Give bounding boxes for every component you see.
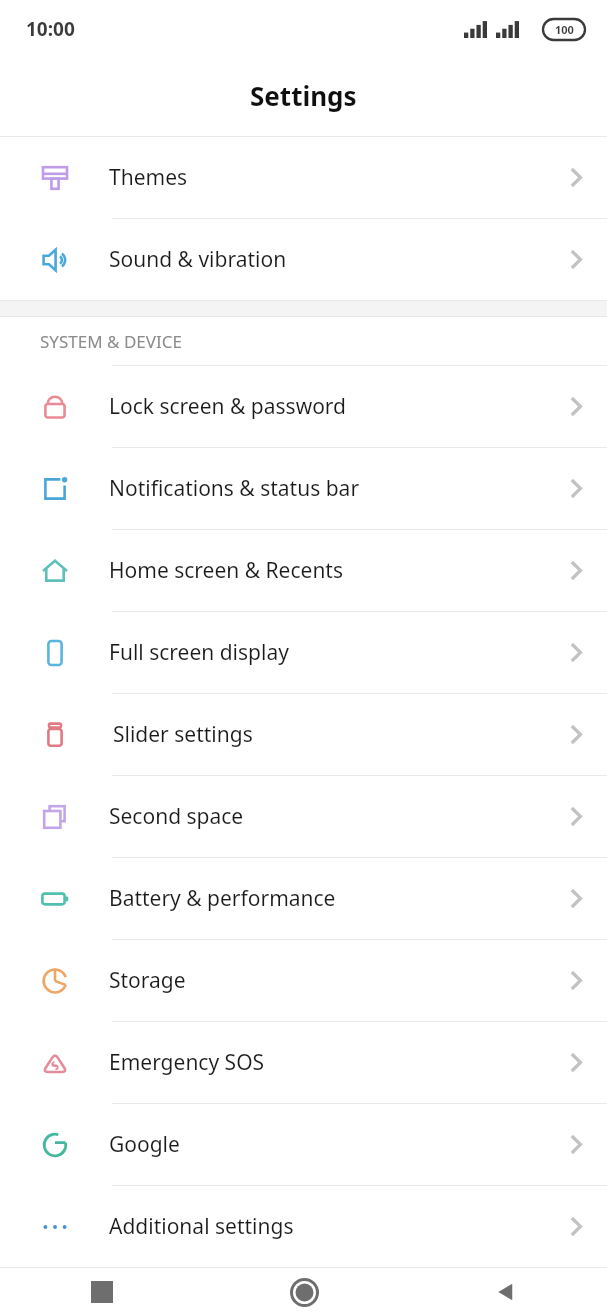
button[interactable]: Storage [0, 940, 607, 1021]
staticText: Themes [109, 163, 544, 192]
button[interactable]: Notifications & status bar [0, 448, 607, 529]
staticText: Full screen display [109, 638, 544, 667]
button[interactable]: Google [0, 1104, 607, 1185]
button[interactable]: Themes [0, 137, 607, 218]
staticText: Google [109, 1130, 544, 1159]
staticText: Notifications & status bar [109, 474, 544, 503]
button[interactable]: Home [203, 1268, 405, 1316]
staticText: Storage [109, 966, 544, 995]
button[interactable]: Second space [0, 776, 607, 857]
staticText: Slider settings [113, 720, 548, 749]
staticText: 100 [555, 22, 574, 37]
button[interactable]: Slider settings [0, 694, 607, 775]
button[interactable]: Home screen & Recents [0, 530, 607, 611]
staticText: Emergency SOS [109, 1048, 544, 1077]
staticText: SYSTEM & DEVICE [40, 330, 182, 353]
button[interactable]: Back [405, 1268, 607, 1316]
staticText: Second space [109, 802, 544, 831]
button[interactable]: Recents [0, 1268, 203, 1316]
staticText: 10:00 [26, 16, 75, 42]
button[interactable]: Additional settings [0, 1186, 607, 1267]
staticText: Lock screen & password [109, 392, 544, 421]
button[interactable]: Full screen display [0, 612, 607, 693]
staticText: Battery & performance [109, 884, 544, 913]
button[interactable]: Sound & vibration [0, 219, 607, 300]
button[interactable]: Battery & performance [0, 858, 607, 939]
staticText: Settings [250, 78, 357, 113]
button[interactable]: Lock screen & password [0, 366, 607, 447]
staticText: Home screen & Recents [109, 556, 544, 585]
staticText: Sound & vibration [109, 245, 544, 274]
button[interactable]: Emergency SOS [0, 1022, 607, 1103]
staticText: Additional settings [109, 1212, 544, 1241]
